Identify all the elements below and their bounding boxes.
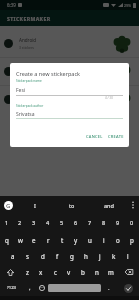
button[interactable]: 3 [27, 214, 41, 231]
button[interactable]: Google search [0, 196, 16, 214]
staticText: Cats [19, 93, 29, 99]
staticText: o [116, 236, 120, 244]
staticText: b [81, 268, 85, 276]
button[interactable]: b [76, 264, 90, 280]
button[interactable]: h [79, 248, 93, 264]
button[interactable]: to [53, 196, 90, 214]
staticText: u [88, 236, 92, 244]
button[interactable]: z [20, 264, 34, 280]
button[interactable]: , [23, 280, 36, 296]
button[interactable]: s [20, 248, 35, 264]
staticText: z [26, 268, 29, 276]
staticText: j [99, 252, 101, 260]
button[interactable]: CREATE [106, 131, 126, 142]
staticText: and [104, 202, 114, 209]
button[interactable]: 1 [0, 214, 13, 231]
button[interactable]: Android [0, 30, 139, 57]
staticText: m [108, 268, 114, 276]
button[interactable]: and [90, 196, 127, 214]
staticText: y [74, 236, 78, 244]
button[interactable]: x [34, 264, 48, 280]
button[interactable]: y [69, 231, 83, 248]
button[interactable]: i [97, 231, 111, 248]
staticText: 5 [60, 219, 64, 226]
staticText: p [130, 236, 134, 244]
button[interactable]: Shift [0, 264, 20, 280]
button[interactable]: I [16, 196, 53, 214]
button[interactable]: . [101, 280, 117, 296]
staticText: 8 stickers [19, 101, 34, 106]
button[interactable]: 2 [13, 214, 27, 231]
button[interactable]: Fesi [0, 58, 139, 85]
staticText: 7 [88, 219, 92, 226]
staticText: 8 [102, 219, 106, 226]
button[interactable]: q [0, 231, 13, 248]
staticText: 6:39 [7, 2, 16, 8]
staticText: l [127, 252, 129, 260]
staticText: 9 [116, 219, 120, 226]
button[interactable]: 0 [125, 214, 139, 231]
button[interactable]: u [83, 231, 97, 248]
staticText: G [6, 202, 11, 210]
button[interactable]: a [5, 248, 20, 264]
button[interactable]: g [65, 248, 79, 264]
button[interactable]: 9 [111, 214, 125, 231]
button[interactable]: n [90, 264, 104, 280]
button[interactable]: 4 [41, 214, 55, 231]
button[interactable]: o [111, 231, 125, 248]
button[interactable]: e [27, 231, 41, 248]
staticText: k [112, 252, 116, 260]
staticText: 29% [124, 3, 132, 8]
button[interactable]: v [62, 264, 76, 280]
button[interactable]: k [107, 248, 121, 264]
button[interactable]: r [41, 231, 55, 248]
staticText: CANCEL [86, 134, 103, 139]
staticText: n [95, 268, 99, 276]
button[interactable]: CANCEL [84, 131, 105, 142]
button[interactable]: 7 [83, 214, 97, 231]
staticText: . [108, 284, 110, 292]
staticText: d [41, 252, 45, 260]
staticText: g [70, 252, 74, 260]
button[interactable]: t [55, 231, 69, 248]
staticText: 1 [5, 219, 9, 226]
staticText: Android [19, 37, 37, 43]
staticText: , [29, 284, 31, 292]
staticText: ?123 [7, 285, 17, 291]
staticText: Stickerpack author [16, 104, 44, 108]
button[interactable]: w [13, 231, 27, 248]
button[interactable]: 8 [97, 214, 111, 231]
button[interactable]: Cats [0, 86, 139, 113]
button[interactable]: Backspace [118, 264, 139, 280]
staticText: c [54, 268, 57, 276]
button[interactable]: c [48, 264, 62, 280]
button[interactable]: l [121, 248, 135, 264]
button[interactable]: Emoji [36, 280, 48, 296]
staticText: q [5, 236, 9, 244]
staticText: 3 stickers [19, 45, 34, 50]
staticText: 1 sticker [19, 73, 33, 78]
button[interactable]: f [50, 248, 65, 264]
button[interactable]: d [35, 248, 50, 264]
staticText: Srivatsa [16, 111, 35, 118]
staticText: 4 / 30 [105, 96, 114, 100]
button[interactable]: Space [48, 284, 101, 292]
staticText: h [84, 252, 88, 260]
button[interactable]: More options [127, 196, 139, 214]
staticText: to [69, 202, 75, 209]
staticText: 0 [130, 219, 134, 226]
button[interactable]: 6 [69, 214, 83, 231]
button[interactable]: Enter [117, 280, 139, 296]
staticText: STICKERMAKER [7, 15, 51, 22]
staticText: CREATE [108, 134, 124, 139]
staticText: Create a new stickerpack [16, 70, 81, 77]
staticText: e [32, 236, 36, 244]
staticText: w [18, 236, 23, 244]
staticText: a [11, 252, 15, 260]
button[interactable]: m [104, 264, 118, 280]
button[interactable]: p [125, 231, 139, 248]
button[interactable]: ?123 [0, 280, 23, 296]
button[interactable]: 5 [55, 214, 69, 231]
button[interactable]: j [93, 248, 107, 264]
